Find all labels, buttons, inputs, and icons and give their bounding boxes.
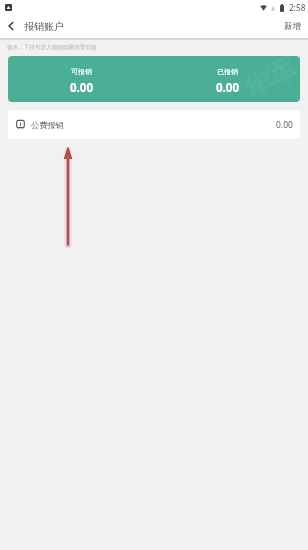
staticText: 华军	[237, 56, 300, 102]
staticText: 已报销	[217, 67, 238, 76]
staticText: 报销账户	[24, 20, 64, 33]
button[interactable]: 华军	[8, 56, 300, 102]
staticText: 2:58	[289, 2, 306, 13]
button[interactable]: Back	[0, 15, 22, 37]
staticText: 新增	[284, 21, 301, 32]
staticText: 可报销	[71, 67, 92, 76]
staticText: 提示：下拉可进入报销隐藏设置页面	[7, 44, 97, 51]
button[interactable]: 新增	[277, 17, 308, 36]
button[interactable]: 公费报销	[8, 110, 300, 139]
staticText: 0.00	[70, 80, 93, 96]
staticText: 公费报销	[31, 120, 64, 130]
staticText: 0.00	[276, 119, 293, 131]
staticText: 0.00	[216, 80, 239, 96]
